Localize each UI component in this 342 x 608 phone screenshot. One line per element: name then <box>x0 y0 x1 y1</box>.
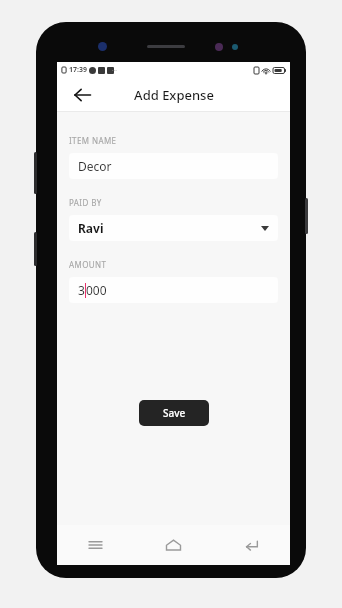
staticText: Add Expense <box>134 86 214 104</box>
staticText: 3 <box>78 282 85 298</box>
button[interactable]: Ravi <box>69 215 278 241</box>
staticText: AMOUNT <box>69 259 107 270</box>
staticText: PAID BY <box>69 197 102 208</box>
button[interactable]: Decor <box>69 153 278 179</box>
button[interactable]: Home <box>134 525 212 565</box>
staticText: ··· <box>112 66 117 74</box>
button[interactable]: Back <box>69 82 95 108</box>
staticText: ITEM NAME <box>69 135 117 146</box>
button[interactable]: 3 <box>69 277 278 303</box>
button[interactable]: Save <box>139 400 209 426</box>
button[interactable]: Back <box>212 525 290 565</box>
staticText: Decor <box>78 158 112 174</box>
staticText: 17:39 <box>69 65 87 75</box>
button[interactable]: Recents <box>57 525 134 565</box>
staticText: Ravi <box>78 220 104 236</box>
staticText: Save <box>163 406 186 420</box>
staticText: 000 <box>86 282 107 298</box>
